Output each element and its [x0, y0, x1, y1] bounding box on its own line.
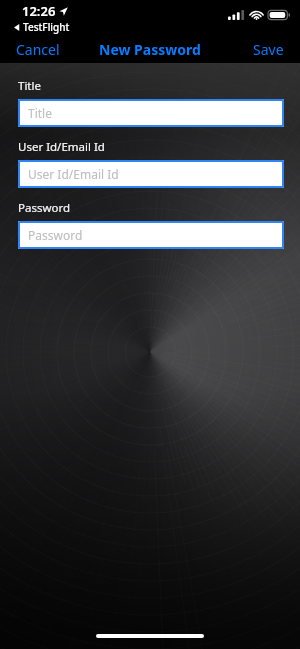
staticText: Title [28, 105, 52, 121]
staticText: Cancel [16, 40, 60, 59]
staticText: User Id/Email Id [28, 166, 119, 182]
button[interactable]: Save [237, 37, 300, 62]
staticText: Save [253, 40, 284, 59]
staticText: New Password [99, 40, 201, 59]
button[interactable]: User Id/Email Id [18, 160, 284, 188]
button[interactable]: Cancel [0, 37, 76, 62]
staticText: 12:26 [22, 2, 56, 20]
other: Home indicator [96, 634, 204, 638]
staticText: User Id/Email Id [18, 139, 105, 155]
button[interactable]: Title [18, 99, 284, 127]
button[interactable]: Password [18, 221, 284, 249]
staticText: Password [28, 227, 83, 243]
staticText: Password [18, 200, 71, 216]
staticText: Title [18, 78, 41, 94]
staticText: TestFlight [23, 20, 70, 34]
